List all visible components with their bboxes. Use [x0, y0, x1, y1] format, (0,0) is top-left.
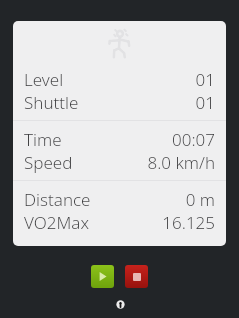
- staticText: 0 m: [185, 188, 215, 211]
- staticText: Level: [24, 68, 64, 91]
- staticText: 01: [195, 91, 215, 114]
- staticText: Distance: [24, 188, 91, 211]
- staticText: Speed: [24, 151, 73, 174]
- staticText: 01: [195, 68, 215, 91]
- staticText: Shuttle: [24, 91, 79, 114]
- button[interactable]: Start: [91, 265, 114, 288]
- staticText: Time: [24, 128, 62, 151]
- staticText: 8.0 km/h: [147, 151, 215, 174]
- button[interactable]: Stop: [125, 265, 148, 288]
- staticText: 16.125: [162, 211, 215, 234]
- staticText: 00:07: [172, 128, 215, 151]
- button[interactable]: Info: [112, 296, 128, 312]
- staticText: VO2Max: [24, 211, 89, 234]
